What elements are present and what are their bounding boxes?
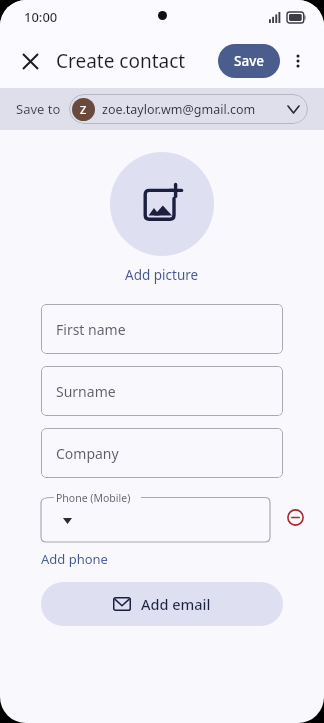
button[interactable]: Close [12,43,48,79]
button[interactable]: Remove phone [278,500,312,534]
staticText: Create contact [56,48,186,74]
staticText: First name [56,320,126,339]
button[interactable]: Save [218,44,280,78]
button[interactable]: Phone type [50,504,84,538]
staticText: Phone (Mobile) [56,491,131,505]
button[interactable]: Add picture [125,266,199,284]
staticText: Add email [141,594,211,614]
button[interactable]: Add picture [110,152,214,256]
staticText: Surname [56,382,116,401]
staticText: Save [234,52,265,70]
staticText: 10:00 [24,8,58,26]
button[interactable]: Surname [41,366,283,416]
button[interactable]: Z [69,94,308,124]
staticText: Save to [16,100,61,118]
button[interactable]: Add email [41,582,283,626]
button[interactable]: More options [280,43,316,79]
staticText: zoe.taylor.wm@gmail.com [102,101,284,118]
button[interactable]: Company [41,428,283,478]
button[interactable]: Add phone [41,550,108,568]
button[interactable]: First name [41,304,283,354]
staticText: Company [56,444,119,463]
staticText: Z [80,102,87,117]
